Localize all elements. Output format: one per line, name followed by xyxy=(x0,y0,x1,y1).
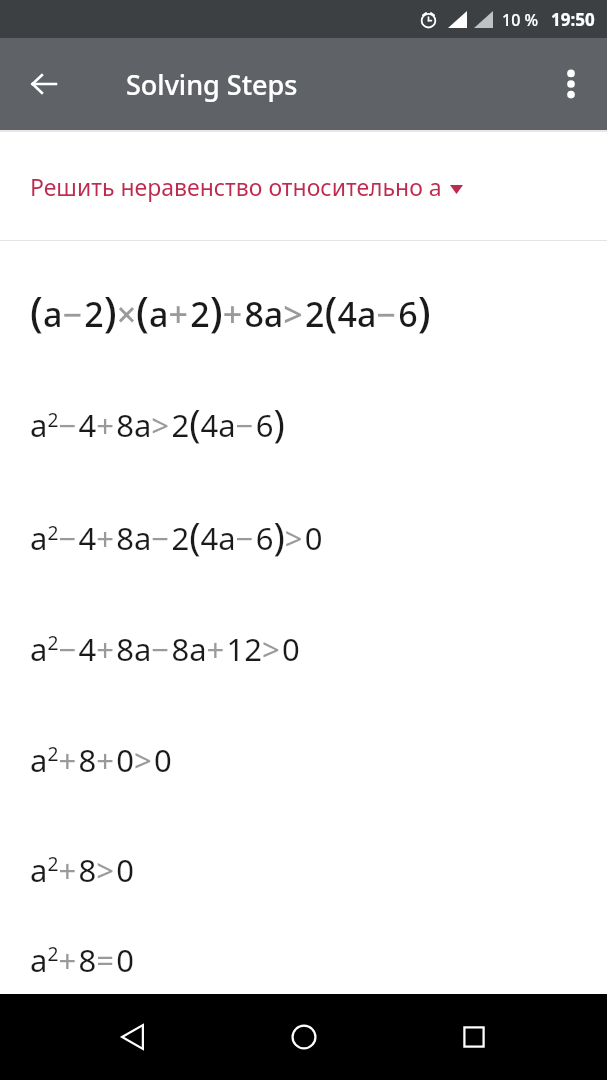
button[interactable]: Home xyxy=(267,1000,341,1074)
staticText: a2+ 8+ 0> 0 xyxy=(30,739,172,781)
button[interactable]: (a− 2)×(a+ 2)+ 8a> 2(4a− 6) xyxy=(0,255,607,367)
staticText: a2− 4+ 8a> 2(4a− 6) xyxy=(30,397,285,449)
staticText: a2− 4+ 8a− 2(4a− 6)> 0 xyxy=(30,510,323,562)
staticText: a2+ 8= 0 xyxy=(30,939,134,981)
button[interactable]: a2− 4+ 8a> 2(4a− 6) xyxy=(0,367,607,479)
button[interactable]: Решить неравенство относительно a xyxy=(0,132,607,240)
staticText: (a− 2)×(a+ 2)+ 8a> 2(4a− 6) xyxy=(30,283,431,339)
button[interactable]: Back xyxy=(18,58,70,110)
staticText: 10 % xyxy=(502,9,539,31)
button[interactable]: Recent apps xyxy=(437,1000,511,1074)
staticText: Solving Steps xyxy=(126,66,298,103)
button[interactable]: a2+ 8= 0 xyxy=(0,925,607,994)
button[interactable]: a2− 4+ 8a− 8a+ 12> 0 xyxy=(0,593,607,705)
button[interactable]: a2− 4+ 8a− 2(4a− 6)> 0 xyxy=(0,479,607,593)
staticText: a2+ 8> 0 xyxy=(30,849,134,891)
staticText: Решить неравенство относительно a xyxy=(30,171,442,202)
button[interactable]: More options xyxy=(545,58,597,110)
button[interactable]: a2+ 8> 0 xyxy=(0,815,607,925)
staticText: 19:50 xyxy=(551,8,595,31)
button[interactable]: Back xyxy=(96,1000,170,1074)
button[interactable]: a2+ 8+ 0> 0 xyxy=(0,705,607,815)
staticText: a2− 4+ 8a− 8a+ 12> 0 xyxy=(30,628,300,670)
